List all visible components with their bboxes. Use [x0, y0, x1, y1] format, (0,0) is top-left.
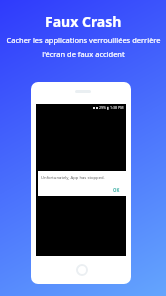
- button[interactable]: [76, 264, 88, 276]
- staticText: Unfortunately, App has stopped.: [41, 175, 105, 181]
- staticText: 29% ▮ 1:38 PM: [99, 105, 124, 110]
- button[interactable]: Unfortunately, App has stopped.: [38, 171, 126, 196]
- staticText: OK: [113, 187, 120, 193]
- staticText: Faux Crash: [45, 12, 122, 31]
- staticText: Cacher les applications verrouillées der…: [6, 35, 161, 59]
- button[interactable]: 29% ▮ 1:38 PM: [31, 82, 131, 284]
